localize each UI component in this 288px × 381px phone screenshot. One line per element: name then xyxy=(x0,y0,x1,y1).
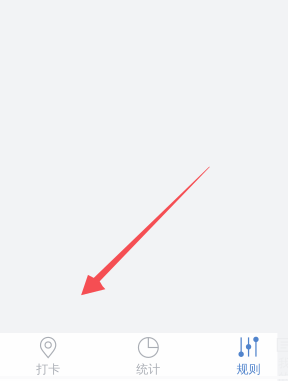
button[interactable]: 我的 xyxy=(276,333,288,381)
button[interactable]: 规则 xyxy=(198,333,288,381)
staticText: 规则 xyxy=(236,362,260,377)
button[interactable]: 统计 xyxy=(98,333,198,381)
staticText: 统计 xyxy=(136,362,160,377)
button[interactable]: 打卡 xyxy=(0,333,98,381)
staticText: 我的 xyxy=(278,356,288,381)
staticText: 打卡 xyxy=(36,362,60,377)
